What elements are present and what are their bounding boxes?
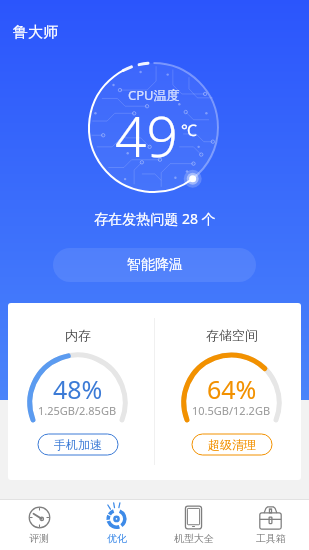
staticText: 内存 (65, 327, 91, 343)
staticText: 48% (53, 372, 103, 406)
staticText: 10.5GB/12.2GB (192, 403, 271, 418)
staticText: 工具箱 (256, 532, 286, 545)
staticText: 64% (207, 372, 257, 406)
staticText: 智能降温 (127, 256, 183, 274)
button[interactable]: 机型大全 (155, 500, 232, 550)
staticText: 鲁大师 (13, 23, 58, 42)
button[interactable]: 工具箱 (232, 500, 309, 550)
staticText: 手机加速 (54, 437, 102, 452)
staticText: 评测 (29, 532, 49, 545)
button[interactable]: 评测 (0, 500, 78, 550)
staticText: 机型大全 (174, 532, 214, 545)
staticText: 1.25GB/2.85GB (38, 403, 117, 418)
staticText: 49 (115, 98, 178, 173)
button[interactable]: 优化 (78, 500, 155, 550)
staticText: CPU温度 (128, 86, 180, 104)
staticText: ℃ (181, 119, 197, 141)
button[interactable]: 智能降温 (53, 248, 256, 282)
staticText: 优化 (107, 532, 127, 545)
staticText: 超级清理 (208, 437, 256, 452)
staticText: 存在发热问题 28 个 (94, 209, 216, 228)
button[interactable]: 超级清理 (192, 434, 272, 455)
staticText: 存储空间 (206, 327, 258, 343)
button[interactable]: 手机加速 (38, 434, 118, 455)
